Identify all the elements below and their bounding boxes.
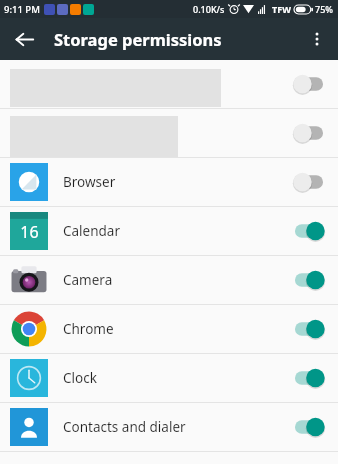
staticText: 16 — [20, 221, 39, 243]
button[interactable]: Off — [0, 109, 338, 157]
staticText: 75% — [315, 3, 333, 15]
staticText: TFW — [272, 3, 291, 15]
staticText: 9:11 PM — [4, 3, 40, 16]
button[interactable]: Clock — [0, 354, 338, 402]
button[interactable]: 16 — [0, 207, 338, 255]
button[interactable]: On — [291, 416, 327, 438]
button[interactable]: Off — [0, 60, 338, 108]
button[interactable]: Off — [291, 122, 327, 144]
staticText: Camera — [63, 271, 113, 289]
staticText: Contacts and dialer — [63, 418, 186, 436]
button[interactable]: Off — [291, 171, 327, 193]
staticText: Clock — [63, 369, 97, 387]
button[interactable]: Camera — [0, 256, 338, 304]
button[interactable]: Off — [291, 73, 327, 95]
button[interactable]: More options — [300, 22, 334, 56]
button[interactable]: On — [291, 269, 327, 291]
staticText: Browser — [63, 173, 116, 191]
button[interactable]: On — [291, 318, 327, 340]
staticText: 0.10K/s — [193, 3, 225, 15]
staticText: Storage permissions — [54, 28, 222, 50]
button[interactable]: Back — [7, 22, 41, 56]
button[interactable]: Chrome — [0, 305, 338, 353]
button[interactable]: On — [291, 220, 327, 242]
button[interactable]: On — [291, 367, 327, 389]
button[interactable]: Browser — [0, 158, 338, 206]
staticText: Chrome — [63, 320, 114, 338]
staticText: Calendar — [63, 222, 120, 240]
button[interactable]: Contacts and dialer — [0, 403, 338, 451]
